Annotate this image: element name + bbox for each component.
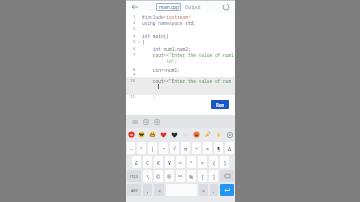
staticText: \ (147, 173, 149, 180)
staticText: 2 (133, 20, 136, 26)
button[interactable]: Emoji cool (136, 128, 147, 141)
staticText: 4 (133, 33, 136, 39)
staticText: 5 (133, 39, 136, 45)
button[interactable]: Refresh (219, 1, 232, 13)
button[interactable]: . (210, 184, 218, 196)
button[interactable]: ° (137, 142, 146, 154)
staticText: using namespace std; (142, 20, 196, 26)
staticText: int num1,num2; (142, 46, 191, 52)
staticText: © (156, 173, 161, 180)
button[interactable]: Emoji black heart (169, 128, 180, 141)
staticText: #include<iostream> (142, 14, 191, 20)
staticText: \n"; (142, 58, 178, 64)
staticText: Δ (228, 145, 232, 152)
button[interactable]: % (187, 170, 196, 182)
button[interactable]: ® (165, 170, 174, 182)
button[interactable]: Back (126, 1, 143, 13)
staticText: ?123 (130, 174, 138, 179)
button[interactable]: Keyboard menu (131, 118, 139, 126)
button[interactable]: ABC (127, 184, 141, 196)
staticText: 6 (133, 46, 136, 52)
button[interactable]: } (220, 156, 229, 168)
staticText: int main() (142, 33, 169, 39)
button[interactable]: More emoji (224, 128, 235, 141)
staticText: ° (190, 159, 193, 166)
button[interactable]: Emoji red heart (158, 128, 169, 141)
staticText: ÷ (195, 145, 198, 152)
staticText: < (158, 187, 161, 194)
staticText: ~ (130, 145, 133, 152)
staticText: { (213, 159, 215, 166)
button[interactable]: > (199, 184, 208, 196)
staticText: main.cpp (159, 4, 179, 10)
button[interactable]: Backspace (220, 170, 234, 182)
button[interactable]: Enter (220, 184, 234, 196)
staticText: 11 (130, 94, 136, 100)
staticText: ABC (131, 188, 138, 193)
button[interactable]: £ (132, 156, 141, 168)
button[interactable]: Emoji grin (147, 128, 158, 141)
button[interactable]: ?123 (127, 170, 141, 182)
button[interactable]: × (203, 142, 212, 154)
button[interactable]: [ (198, 170, 207, 182)
staticText: } (142, 94, 156, 100)
button[interactable]: ™ (176, 170, 185, 182)
button[interactable]: ^ (176, 156, 185, 168)
button[interactable]: Emoji ok hand (213, 128, 224, 141)
button[interactable]: \ (143, 170, 152, 182)
staticText: 7 (133, 52, 136, 58)
button[interactable]: = (198, 156, 207, 168)
staticText (142, 84, 167, 90)
button[interactable]: , (143, 184, 152, 196)
button[interactable]: © (154, 170, 163, 182)
button[interactable]: ¶ (214, 142, 223, 154)
staticText: • (163, 145, 165, 152)
button[interactable]: { (209, 156, 218, 168)
button[interactable]: ° (187, 156, 196, 168)
staticText: . (213, 187, 215, 194)
staticText: { (142, 39, 145, 45)
button[interactable]: main.cpp (156, 3, 181, 11)
button[interactable]: π (181, 142, 190, 154)
button[interactable]: Output (181, 3, 205, 11)
staticText: | (151, 145, 154, 152)
staticText: > (202, 187, 205, 194)
button[interactable]: • (159, 142, 168, 154)
staticText: cout<<"Enter the value of num (142, 78, 232, 84)
button[interactable]: Emoji angry (126, 128, 136, 141)
staticText: cin>>num1; (142, 67, 180, 73)
staticText: € (157, 159, 160, 166)
button[interactable]: Emoji party (202, 128, 213, 141)
button[interactable]: Clipboard (142, 118, 150, 126)
staticText: Run (216, 102, 225, 108)
staticText: 1 (133, 14, 136, 20)
staticText: ™ (178, 173, 183, 180)
staticText: ] (213, 173, 215, 180)
staticText: % (189, 173, 194, 180)
button[interactable]: € (154, 156, 163, 168)
staticText: ¢ (146, 159, 149, 166)
button[interactable]: ¢ (143, 156, 152, 168)
button[interactable]: ~ (127, 142, 135, 154)
button[interactable]: < (154, 184, 164, 196)
staticText: × (206, 145, 209, 152)
button[interactable]: | (148, 142, 157, 154)
button[interactable]: √ (170, 142, 179, 154)
button[interactable]: Run (211, 100, 229, 109)
button[interactable]: Δ (225, 142, 234, 154)
button[interactable]: ] (209, 170, 218, 182)
button[interactable]: ÷ (192, 142, 201, 154)
button[interactable]: Sticker (153, 118, 161, 126)
staticText: [ (202, 173, 204, 180)
staticText: 8 (133, 67, 136, 73)
button[interactable]: ¥ (165, 156, 174, 168)
staticText: , (147, 187, 149, 194)
staticText: ¥ (168, 159, 171, 166)
staticText: Output (185, 4, 201, 10)
staticText: = (201, 159, 204, 166)
button[interactable]: Emoji love (191, 128, 202, 141)
staticText: ^ (179, 159, 182, 166)
staticText: ° (140, 145, 143, 152)
